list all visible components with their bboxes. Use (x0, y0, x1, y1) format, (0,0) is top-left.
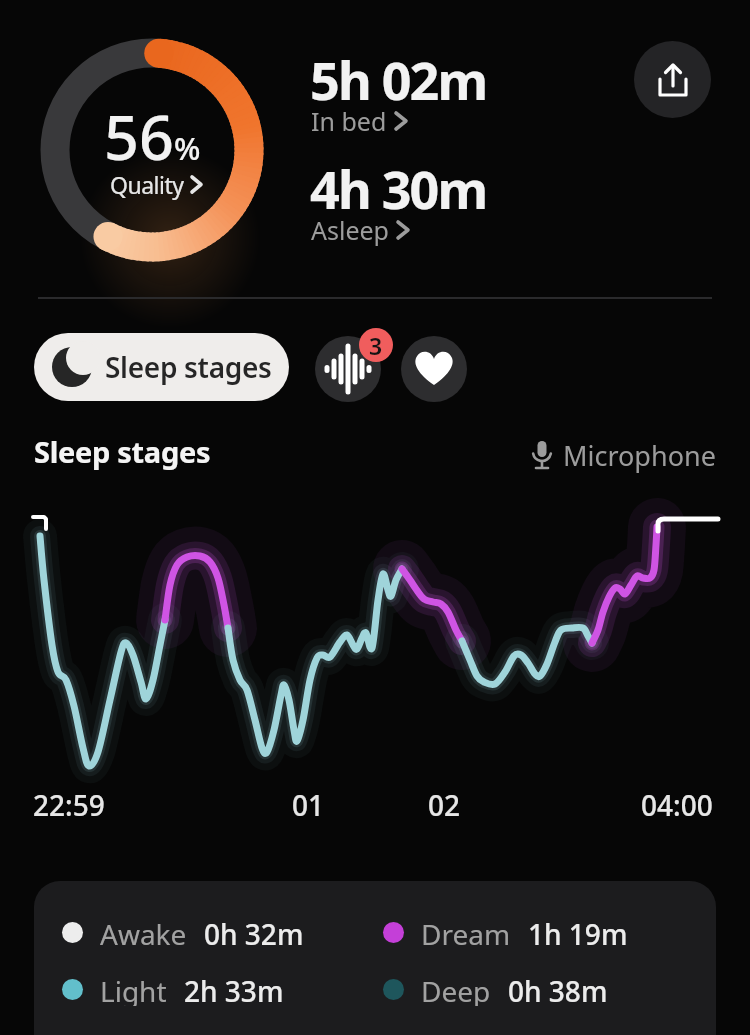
staticText: Asleep (311, 213, 389, 247)
staticText: Microphone (563, 437, 716, 474)
staticText: % (174, 127, 201, 169)
staticText: 1h 19m (528, 915, 628, 949)
staticText: 2h 33m (184, 972, 284, 1006)
staticText: 3 (369, 330, 383, 361)
staticText: 0h 38m (508, 972, 608, 1006)
staticText: 01 (292, 786, 325, 824)
staticText: Sleep stages (105, 348, 272, 386)
button[interactable]: In bed (311, 104, 407, 138)
staticText: Light (100, 972, 167, 1006)
staticText: 04:00 (641, 786, 713, 824)
button[interactable]: Sleep stages (34, 333, 289, 401)
staticText: Quality (110, 169, 184, 200)
button[interactable] (634, 41, 711, 118)
staticText: Sleep stages (34, 432, 211, 471)
staticText: In bed (311, 104, 387, 138)
staticText: Awake (100, 915, 187, 949)
staticText: 0h 32m (204, 915, 304, 949)
staticText: 5h 02m (310, 44, 487, 115)
button[interactable] (315, 336, 381, 402)
button[interactable]: Quality (110, 169, 202, 200)
staticText: Dream (421, 915, 511, 949)
staticText: 22:59 (33, 786, 105, 824)
button[interactable]: Asleep (311, 213, 409, 247)
button[interactable]: Microphone (531, 437, 716, 474)
staticText: 02 (428, 786, 461, 824)
staticText: Deep (421, 972, 491, 1006)
staticText: 4h 30m (310, 153, 487, 224)
button[interactable] (401, 336, 467, 402)
staticText: 56 (104, 95, 174, 178)
